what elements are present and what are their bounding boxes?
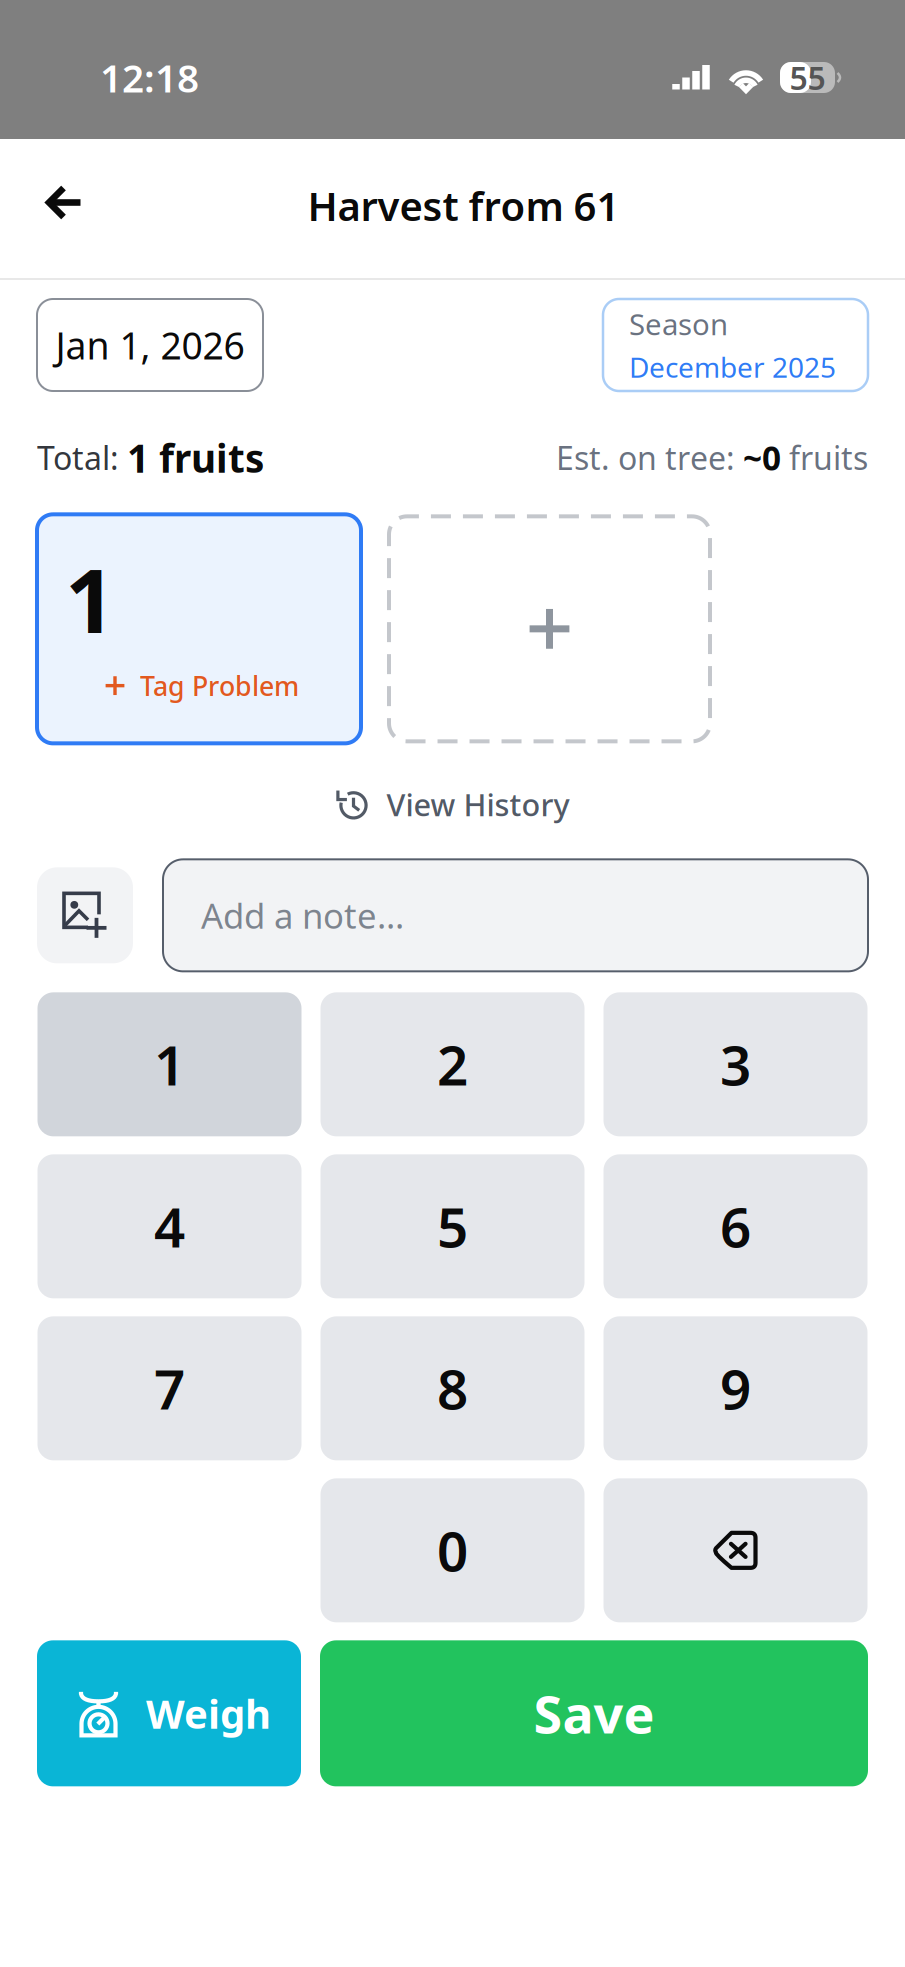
button[interactable]: Add harvest entry [387,514,712,743]
button[interactable]: Add a note... [163,859,868,971]
staticText: Total: [37,436,127,479]
button[interactable]: 5 [320,1154,584,1298]
staticText: 8 [437,1352,468,1425]
button[interactable]: Back [0,161,115,258]
staticText: 55 [789,56,825,99]
button[interactable]: 3 [603,992,867,1136]
button[interactable]: 7 [37,1316,301,1460]
staticText: ~0 [743,435,781,480]
staticText: Save [533,1679,654,1748]
staticText: December 2025 [629,348,836,386]
button[interactable]: 4 [37,1154,301,1298]
staticText: Est. on tree: [556,436,743,479]
button[interactable]: Season [603,299,868,391]
staticText: 9 [720,1352,751,1425]
staticText: 6 [720,1190,751,1263]
button[interactable]: 1 [37,992,301,1136]
button[interactable]: Jan 1, 2026 [37,299,263,391]
staticText: 1 fruits [127,432,264,483]
staticText: fruits [781,436,868,479]
button[interactable]: View History [335,771,569,837]
staticText: 12:18 [100,52,199,103]
staticText: 3 [720,1028,751,1101]
staticText: 1 [154,1028,185,1101]
button[interactable]: 1 [37,514,361,743]
staticText: 0 [437,1514,468,1587]
button[interactable]: Delete [603,1478,867,1622]
staticText: Add a note... [201,892,404,938]
staticText: 2 [437,1028,468,1101]
staticText: Season [629,304,728,343]
button[interactable]: Weigh [37,1640,301,1786]
button[interactable]: 9 [603,1316,867,1460]
staticText: Weigh [146,1687,271,1740]
staticText: Jan 1, 2026 [55,320,244,370]
button[interactable]: 8 [320,1316,584,1460]
staticText: 7 [154,1352,185,1425]
staticText: Harvest from 61 [307,179,619,232]
button[interactable]: Add photo [37,867,133,963]
button[interactable]: 0 [320,1478,584,1622]
staticText: 5 [437,1190,468,1263]
button[interactable]: 6 [603,1154,867,1298]
staticText: 1 [65,540,115,657]
staticText: Tag Problem [140,668,299,703]
staticText: 4 [154,1190,185,1263]
button[interactable]: 2 [320,992,584,1136]
staticText: View History [386,784,569,825]
button[interactable]: Save [320,1640,868,1786]
